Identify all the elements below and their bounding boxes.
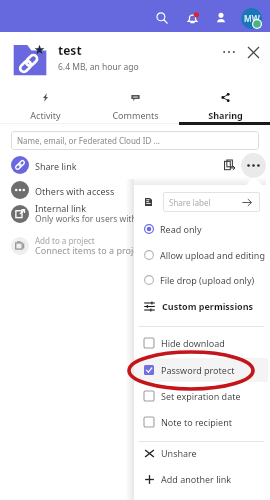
button[interactable]: Allow upload and editing <box>134 243 268 267</box>
button[interactable]: Sharing <box>180 87 270 121</box>
button[interactable]: Add another link <box>134 467 268 491</box>
button[interactable]: Account <box>241 8 262 29</box>
button[interactable]: Comments <box>90 87 180 121</box>
staticText: Add to a project <box>35 235 95 246</box>
staticText: Set expiration date <box>161 390 241 402</box>
staticText: File drop (upload only) <box>160 274 255 286</box>
button[interactable]: Name, email, or Federated Cloud ID ... <box>11 131 259 150</box>
button[interactable]: File drop (upload only) <box>134 268 268 292</box>
staticText: Share label <box>169 197 211 208</box>
staticText: Unshare <box>161 447 197 459</box>
button[interactable]: Share label <box>163 192 260 212</box>
staticText: Others with access <box>35 185 115 197</box>
button[interactable]: Read only <box>134 217 268 241</box>
button[interactable]: Others with access <box>0 178 270 202</box>
staticText: Hide download <box>161 337 225 349</box>
staticText: Sharing <box>208 109 243 121</box>
button[interactable]: Set expiration date <box>134 384 268 408</box>
button[interactable]: Activity <box>0 87 90 121</box>
staticText: Name, email, or Federated Cloud ID ... <box>17 135 160 146</box>
button[interactable]: Password protect <box>134 358 268 382</box>
staticText: Note to recipient <box>161 416 232 428</box>
staticText: test <box>58 42 82 58</box>
button[interactable]: Share link <box>0 153 270 177</box>
button[interactable]: Note to recipient <box>134 410 268 434</box>
button[interactable]: Close <box>243 42 263 62</box>
staticText: Comments <box>112 109 159 121</box>
button[interactable]: Contacts <box>208 5 234 31</box>
button[interactable]: Copy link <box>219 155 239 175</box>
staticText: Allow upload and editing <box>160 249 265 261</box>
button[interactable]: Hide download <box>134 331 268 355</box>
button[interactable]: More options <box>219 42 239 62</box>
staticText: Activity <box>30 109 61 121</box>
button[interactable]: Unshare <box>134 441 268 465</box>
staticText: Connect items to a project to make them … <box>35 244 266 256</box>
staticText: Password protect <box>161 364 235 376</box>
staticText: Add another link <box>161 473 232 485</box>
staticText: 6.4 MB, an hour ago <box>58 61 139 73</box>
staticText: Custom permissions <box>162 300 254 312</box>
button[interactable]: Link settings <box>241 153 266 178</box>
button[interactable]: Notifications <box>179 5 205 31</box>
button[interactable]: Internal link <box>0 201 270 227</box>
button[interactable]: Custom permissions <box>134 294 268 318</box>
staticText: Only works for users with access to this… <box>35 213 218 225</box>
staticText: MW <box>244 13 260 25</box>
staticText: Internal link <box>35 202 86 214</box>
staticText: Share link <box>35 160 77 172</box>
button[interactable]: Search <box>149 5 175 31</box>
button[interactable]: Add to a project <box>0 233 270 259</box>
staticText: Read only <box>160 223 202 235</box>
